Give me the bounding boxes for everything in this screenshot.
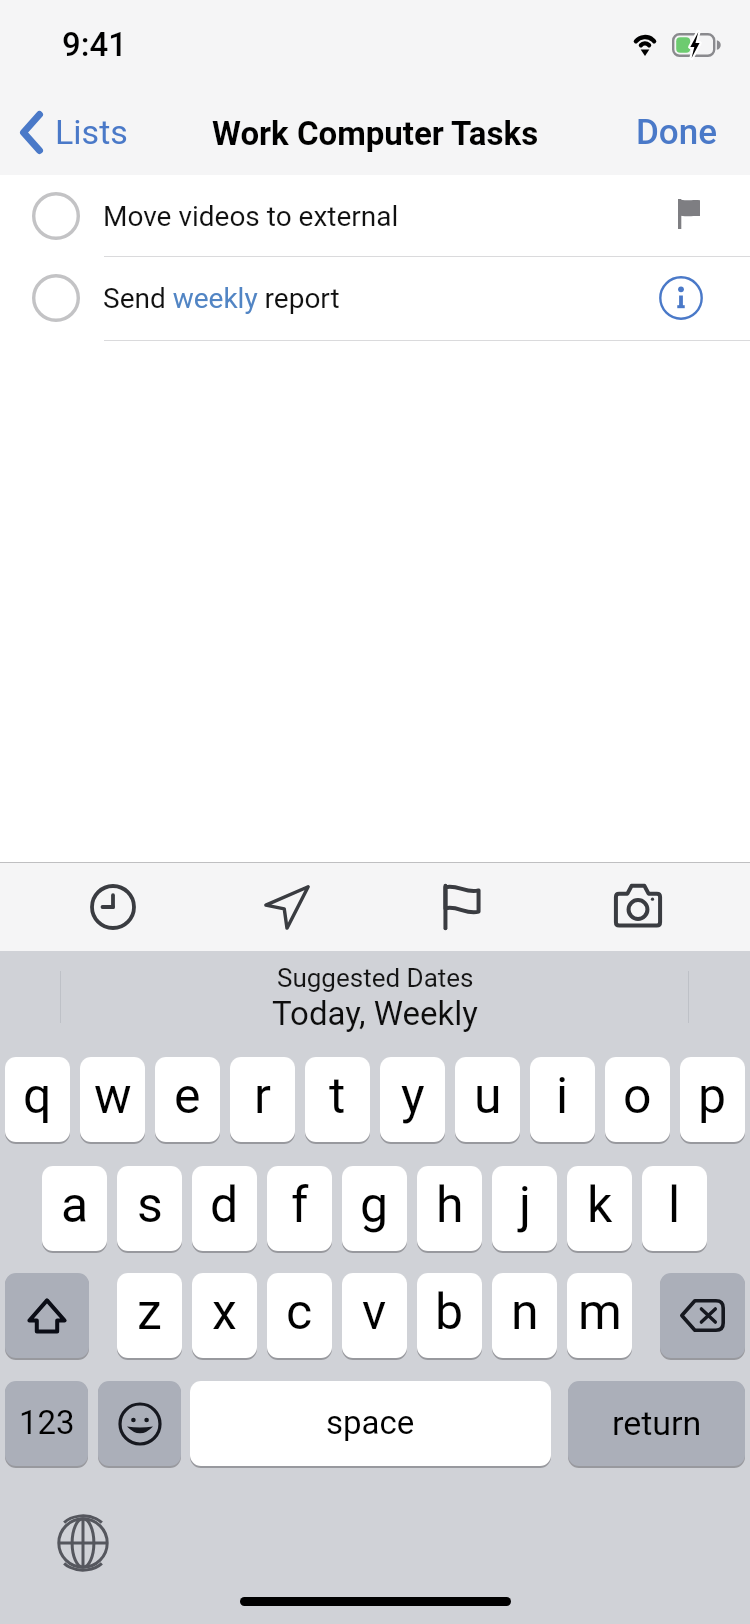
staticText: l — [668, 1176, 681, 1235]
button[interactable]: e — [155, 1057, 220, 1142]
button[interactable]: Lists — [4, 96, 146, 168]
button[interactable]: Location — [247, 867, 327, 947]
button[interactable]: v — [342, 1273, 407, 1358]
button[interactable]: j — [492, 1166, 557, 1251]
button[interactable]: f — [267, 1166, 332, 1251]
staticText: s — [137, 1176, 163, 1235]
button[interactable]: b — [417, 1273, 482, 1358]
button[interactable]: Remind me — [73, 867, 153, 947]
button[interactable]: 123 — [5, 1381, 88, 1466]
button[interactable]: k — [567, 1166, 632, 1251]
button[interactable]: Delete — [660, 1273, 745, 1358]
button[interactable]: Move videos to external — [0, 175, 750, 257]
staticText: f — [291, 1176, 309, 1235]
button[interactable]: Emoji — [98, 1381, 181, 1466]
staticText: return — [612, 1403, 702, 1443]
staticText: Work Computer Tasks — [212, 114, 539, 153]
staticText: u — [474, 1067, 502, 1126]
staticText: t — [329, 1067, 346, 1126]
staticText: i — [556, 1067, 569, 1126]
button[interactable]: u — [455, 1057, 520, 1142]
button[interactable]: y — [380, 1057, 445, 1142]
button[interactable]: a — [42, 1166, 107, 1251]
button[interactable]: return — [568, 1381, 745, 1466]
staticText: Today, Weekly — [272, 994, 478, 1033]
button[interactable]: Send weekly report — [0, 257, 750, 340]
button[interactable]: Add photo — [598, 867, 678, 947]
staticText: g — [360, 1176, 389, 1235]
button[interactable]: Details — [655, 272, 707, 324]
button[interactable]: s — [117, 1166, 182, 1251]
staticText: z — [137, 1283, 162, 1342]
button[interactable]: space — [190, 1381, 551, 1466]
staticText: Suggested Dates — [277, 963, 474, 993]
staticText: r — [254, 1067, 271, 1126]
staticText: Lists — [55, 112, 128, 152]
button[interactable]: i — [530, 1057, 595, 1142]
button[interactable]: c — [267, 1273, 332, 1358]
staticText: e — [174, 1067, 201, 1126]
button[interactable]: Flag — [422, 867, 502, 947]
staticText: v — [362, 1283, 387, 1342]
button[interactable]: Change keyboard — [57, 1517, 109, 1569]
button[interactable]: o — [605, 1057, 670, 1142]
button[interactable]: Done — [612, 96, 744, 168]
staticText: y — [401, 1067, 425, 1126]
staticText: a — [61, 1176, 89, 1235]
button[interactable]: z — [117, 1273, 182, 1358]
staticText: space — [326, 1403, 415, 1442]
staticText: k — [587, 1176, 613, 1235]
staticText: q — [23, 1067, 52, 1126]
staticText: m — [578, 1283, 622, 1342]
staticText: 9:41 — [62, 25, 128, 64]
button[interactable]: q — [5, 1057, 70, 1142]
staticText: c — [286, 1283, 313, 1342]
staticText: x — [212, 1283, 237, 1342]
staticText: j — [519, 1176, 531, 1235]
staticText: b — [435, 1283, 464, 1342]
button[interactable]: x — [192, 1273, 257, 1358]
button[interactable]: w — [80, 1057, 145, 1142]
button[interactable]: Shift — [5, 1273, 89, 1358]
staticText: Move videos to external — [103, 200, 399, 233]
staticText: n — [511, 1283, 539, 1342]
button[interactable]: h — [417, 1166, 482, 1251]
button[interactable]: p — [680, 1057, 745, 1142]
staticText: 123 — [19, 1403, 75, 1442]
staticText: Done — [636, 112, 718, 153]
button[interactable]: t — [305, 1057, 370, 1142]
button[interactable]: n — [492, 1273, 557, 1358]
button[interactable]: d — [192, 1166, 257, 1251]
button[interactable]: l — [642, 1166, 707, 1251]
staticText: p — [698, 1067, 727, 1126]
staticText: Send weekly report — [103, 282, 340, 315]
staticText: d — [210, 1176, 239, 1235]
button[interactable]: g — [342, 1166, 407, 1251]
staticText: h — [436, 1176, 464, 1235]
button[interactable]: r — [230, 1057, 295, 1142]
staticText: o — [623, 1067, 652, 1126]
button[interactable]: m — [567, 1273, 632, 1358]
staticText: w — [94, 1067, 132, 1126]
